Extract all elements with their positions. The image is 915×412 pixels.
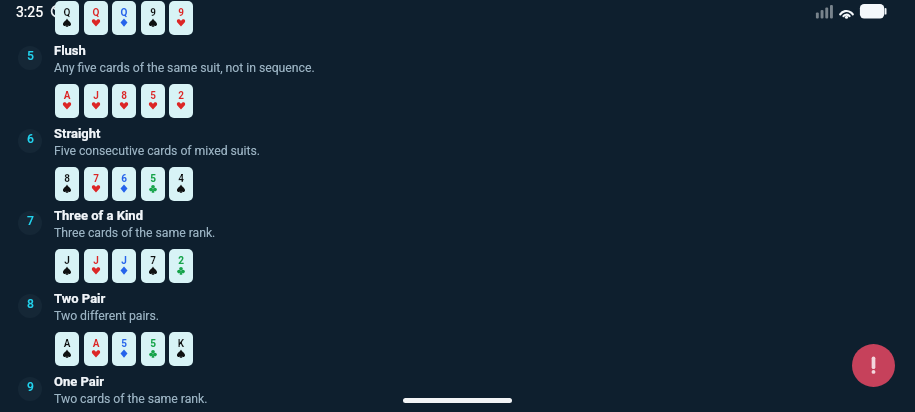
- button[interactable]: 5: [0, 32, 915, 118]
- staticText: Flush: [54, 43, 86, 58]
- staticText: 8: [55, 173, 79, 185]
- staticText: 6: [27, 132, 34, 146]
- button[interactable]: 9: [0, 363, 915, 412]
- staticText: 5: [141, 90, 165, 102]
- staticText: J: [112, 255, 136, 267]
- staticText: Two different pairs.: [54, 309, 159, 323]
- staticText: J: [84, 255, 108, 267]
- staticText: A: [84, 338, 108, 350]
- staticText: 9: [27, 380, 34, 394]
- staticText: Three cards of the same rank.: [54, 226, 216, 240]
- button[interactable]: 7: [0, 197, 915, 283]
- staticText: Any five cards of the same suit, not in …: [54, 61, 315, 75]
- button[interactable]: 8: [0, 280, 915, 366]
- staticText: J: [55, 255, 79, 267]
- staticText: J: [84, 90, 108, 102]
- staticText: 5: [112, 338, 136, 350]
- staticText: Five consecutive cards of mixed suits.: [54, 144, 260, 158]
- button[interactable]: 4: [0, 0, 915, 35]
- staticText: Q: [112, 7, 136, 19]
- button[interactable]: Info: [852, 344, 895, 387]
- staticText: Two Pair: [54, 291, 106, 306]
- staticText: A: [55, 90, 79, 102]
- staticText: 5: [141, 173, 165, 185]
- staticText: 9: [169, 7, 193, 19]
- staticText: One Pair: [54, 374, 104, 389]
- staticText: 2: [169, 90, 193, 102]
- staticText: Two cards of the same rank.: [54, 392, 208, 406]
- staticText: 5: [141, 338, 165, 350]
- staticText: Q: [55, 7, 79, 19]
- staticText: Q: [84, 7, 108, 19]
- staticText: 7: [141, 255, 165, 267]
- staticText: 8: [27, 297, 34, 311]
- staticText: A: [55, 338, 79, 350]
- button[interactable]: 6: [0, 115, 915, 201]
- staticText: 2: [169, 255, 193, 267]
- staticText: 6: [112, 173, 136, 185]
- staticText: 8: [112, 90, 136, 102]
- staticText: 7: [84, 173, 108, 185]
- staticText: Straight: [54, 126, 101, 141]
- staticText: K: [169, 338, 193, 350]
- staticText: 4: [169, 173, 193, 185]
- staticText: Three of a Kind: [54, 208, 143, 223]
- staticText: 7: [27, 214, 34, 228]
- staticText: 9: [141, 7, 165, 19]
- staticText: 5: [27, 49, 34, 63]
- staticText: 3:25: [16, 4, 43, 20]
